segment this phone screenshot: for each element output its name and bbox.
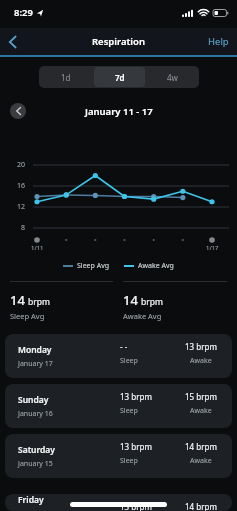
button[interactable]: Sunday xyxy=(5,384,232,428)
staticText: 1/17 xyxy=(206,244,219,252)
staticText: Awake xyxy=(190,406,212,416)
staticText: - - xyxy=(120,341,128,352)
staticText: Sleep Avg xyxy=(10,311,45,321)
staticText: 7d xyxy=(115,72,125,83)
staticText: Awake Avg xyxy=(123,311,162,321)
button[interactable] xyxy=(10,103,26,119)
button[interactable]: Friday xyxy=(5,494,232,511)
staticText: 8:29 xyxy=(14,6,33,19)
button[interactable] xyxy=(0,30,24,54)
staticText: 14 xyxy=(10,291,25,309)
staticText: brpm xyxy=(28,296,50,308)
staticText: January 15 xyxy=(18,459,53,469)
staticText: 13 brpm xyxy=(120,391,152,402)
staticText: Sleep xyxy=(120,456,138,466)
staticText: Awake xyxy=(190,356,212,366)
staticText: 8 xyxy=(21,223,26,233)
staticText: Sunday xyxy=(18,394,49,406)
staticText: Respiration xyxy=(92,35,145,48)
staticText: 1d xyxy=(61,72,71,83)
staticText: Friday xyxy=(18,494,44,506)
staticText: brpm xyxy=(141,296,163,308)
staticText: 14 xyxy=(123,291,138,309)
staticText: January 17 xyxy=(18,359,53,369)
staticText: 15 brpm xyxy=(185,391,217,402)
staticText: January 16 xyxy=(18,409,53,419)
staticText: Awake xyxy=(190,456,212,466)
button[interactable]: 1d xyxy=(40,67,92,87)
staticText: 13 brpm xyxy=(120,501,152,511)
button[interactable]: Help xyxy=(208,35,229,48)
staticText: 13 brpm xyxy=(120,441,152,452)
staticText: Sleep xyxy=(120,406,138,416)
staticText: 14 brpm xyxy=(185,441,217,452)
staticText: 4w xyxy=(167,72,178,83)
button[interactable]: 4w xyxy=(147,67,198,87)
staticText: 16 xyxy=(17,181,26,191)
staticText: January 11 - 17 xyxy=(85,105,153,118)
staticText: 13 brpm xyxy=(185,341,217,352)
staticText: 12 xyxy=(17,202,26,212)
staticText: 14 brpm xyxy=(185,501,217,511)
staticText: Sleep xyxy=(120,356,138,366)
staticText: 20 xyxy=(17,160,26,170)
button[interactable]: 7d xyxy=(94,67,145,87)
button[interactable]: Monday xyxy=(5,334,232,378)
button[interactable]: Saturday xyxy=(5,434,232,478)
staticText: Saturday xyxy=(18,444,55,456)
staticText: Help xyxy=(208,35,229,48)
staticText: Monday xyxy=(18,344,52,356)
staticText: Sleep Avg xyxy=(77,261,110,271)
staticText: 1/11 xyxy=(31,244,44,252)
staticText: Awake Avg xyxy=(138,261,174,271)
